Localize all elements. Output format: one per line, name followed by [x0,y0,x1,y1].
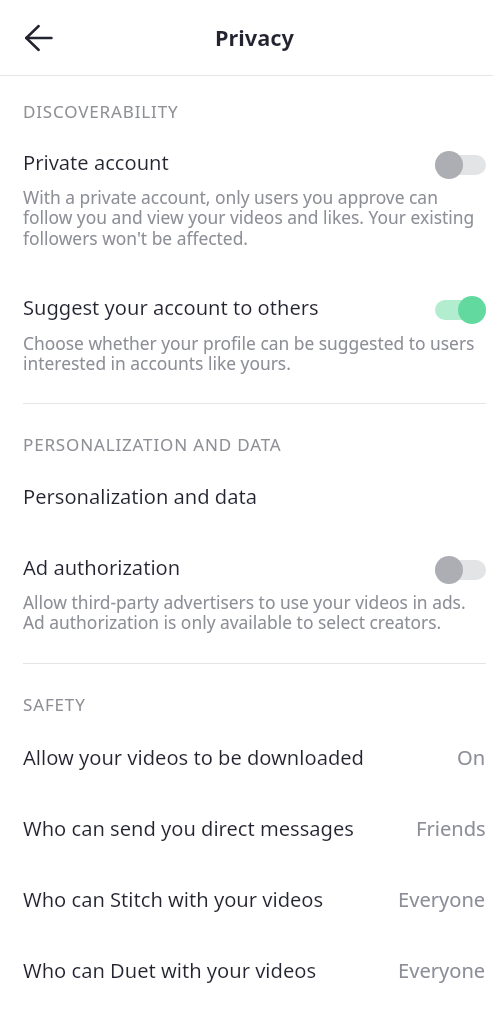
staticText: Privacy [215,23,294,53]
staticText: Friends [416,815,486,842]
staticText: Allow third-party advertisers to use you… [23,590,486,635]
staticText: Everyone [398,957,486,984]
staticText: Private account [23,149,435,176]
staticText: SAFETY [23,693,86,716]
staticText: Personalization and data [23,483,486,510]
staticText: Who can send you direct messages [23,815,416,842]
button[interactable]: Suggest your account to others [23,293,486,322]
button[interactable]: Back [12,10,68,66]
staticText: PERSONALIZATION AND DATA [23,433,282,456]
staticText: Ad authorization [23,554,435,581]
button[interactable]: Who can Stitch with your videos [23,864,486,935]
staticText: Allow your videos to be downloaded [23,744,457,771]
staticText: On [457,744,486,771]
staticText: Everyone [398,886,486,913]
button[interactable]: Ad authorization [23,553,486,582]
staticText: With a private account, only users you a… [23,185,486,251]
button[interactable]: Private account [23,148,486,177]
staticText: Who can Stitch with your videos [23,886,398,913]
staticText: Suggest your account to others [23,294,435,321]
button[interactable]: Allow your videos to be downloaded [23,722,486,793]
staticText: DISCOVERABILITY [23,100,179,123]
staticText: Who can Duet with your videos [23,957,398,984]
button[interactable]: Who can send you direct messages [23,793,486,864]
staticText: Choose whether your profile can be sugge… [23,331,486,376]
button[interactable]: Personalization and data [23,483,486,510]
button[interactable]: Who can Duet with your videos [23,935,486,1006]
